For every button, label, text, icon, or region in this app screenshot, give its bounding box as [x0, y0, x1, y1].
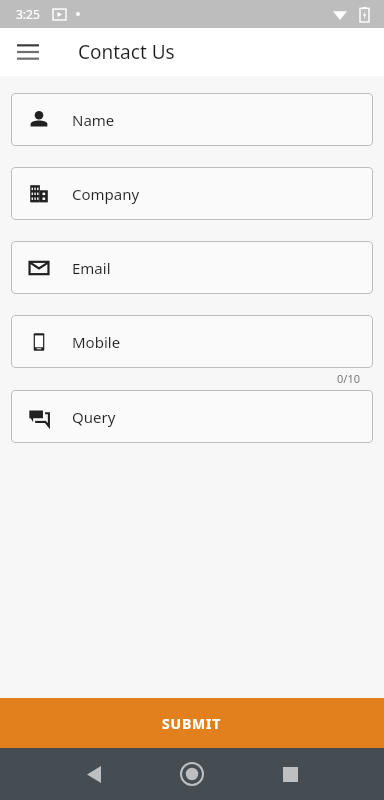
staticText: Email: [72, 258, 111, 278]
staticText: 0/10: [0, 371, 360, 386]
staticText: Mobile: [72, 332, 121, 352]
staticText: 3:25: [16, 6, 40, 22]
button[interactable]: Email: [11, 241, 373, 294]
button[interactable]: Home: [172, 754, 212, 794]
button[interactable]: Query: [11, 390, 373, 443]
staticText: Query: [72, 407, 116, 427]
button[interactable]: SUBMIT: [0, 698, 384, 748]
button[interactable]: Back: [76, 756, 112, 792]
staticText: Company: [72, 184, 140, 204]
button[interactable]: Company: [11, 167, 373, 220]
staticText: Name: [72, 110, 115, 130]
button[interactable]: Open navigation menu: [8, 32, 48, 72]
button[interactable]: Recent apps: [272, 756, 308, 792]
button[interactable]: Mobile: [11, 315, 373, 368]
staticText: SUBMIT: [162, 714, 222, 733]
staticText: Contact Us: [78, 39, 175, 65]
button[interactable]: Name: [11, 93, 373, 146]
